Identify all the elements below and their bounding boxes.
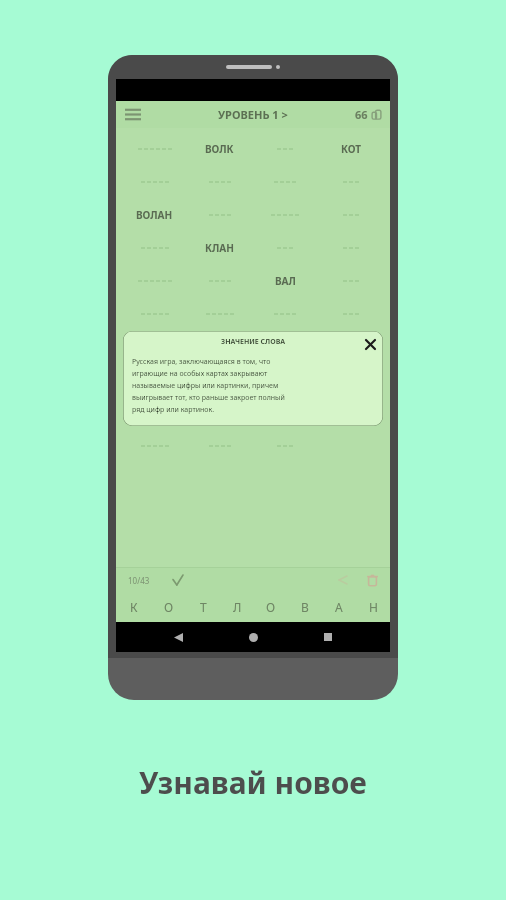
staticText: О [266, 599, 276, 615]
staticText: выигрывает тот, кто раньше закроет полны… [132, 393, 285, 403]
staticText: Н [369, 599, 378, 615]
staticText: УРОВЕНЬ 1 > [218, 107, 288, 122]
button[interactable]: ВОЛК [187, 132, 252, 165]
staticText: КЛАН [205, 241, 234, 255]
button[interactable] [122, 363, 187, 396]
button[interactable] [318, 363, 384, 396]
button[interactable]: Close [363, 337, 377, 351]
button[interactable]: ВАЛ [252, 264, 318, 297]
staticText: Л [233, 599, 242, 615]
button[interactable]: Check [170, 572, 186, 588]
button[interactable]: О [254, 592, 288, 622]
button[interactable]: А [322, 592, 356, 622]
staticText: Русская игра, заключающаяся в том, что [132, 357, 271, 367]
button[interactable]: О [151, 592, 186, 622]
button[interactable]: Coins [355, 107, 382, 122]
button[interactable]: Н [356, 592, 390, 622]
staticText: ВОЛАН [136, 208, 173, 222]
staticText: ОТЛОВ [137, 406, 172, 420]
button[interactable]: Delete [362, 570, 382, 590]
button[interactable]: Т [186, 592, 220, 622]
button[interactable] [187, 363, 252, 396]
button[interactable]: Recents [315, 624, 341, 650]
staticText: А [335, 599, 343, 615]
staticText: К [130, 599, 138, 615]
button[interactable] [252, 363, 318, 396]
staticText: 10/43 [128, 575, 150, 586]
button[interactable]: В [288, 592, 322, 622]
button[interactable]: ВОЛАН [122, 198, 187, 231]
staticText: называемые цифры или картинки, причем [132, 381, 279, 391]
button[interactable]: Л [220, 592, 254, 622]
button[interactable]: К [116, 592, 151, 622]
staticText: О [164, 599, 174, 615]
staticText: КОТ [341, 142, 362, 156]
staticText: 66 [355, 107, 368, 122]
staticText: играющие на особых картах закрывают [132, 369, 268, 379]
button[interactable]: ТОН [318, 396, 384, 429]
button[interactable]: Menu [116, 101, 150, 128]
staticText: ЗНАЧЕНИЕ СЛОВА [221, 337, 286, 347]
staticText: В [301, 599, 309, 615]
button[interactable] [187, 330, 252, 363]
button[interactable]: КЛАН [187, 231, 252, 264]
button[interactable]: КОТ [318, 132, 384, 165]
button[interactable]: Back [334, 571, 352, 589]
button[interactable]: Home [240, 624, 266, 650]
button[interactable]: УРОВЕНЬ 1 > [218, 107, 288, 122]
button[interactable]: ОТЛОВ [122, 396, 187, 429]
button[interactable] [252, 330, 318, 363]
button[interactable] [318, 330, 384, 363]
button[interactable] [187, 396, 252, 429]
button[interactable] [252, 396, 318, 429]
staticText: Узнавай новое [139, 762, 367, 803]
button[interactable]: Back [165, 624, 191, 650]
staticText: ВАЛ [275, 274, 296, 288]
staticText: ряд цифр или картинок. [132, 405, 215, 415]
staticText: ВОЛК [205, 142, 234, 156]
button[interactable] [122, 330, 187, 363]
staticText: Т [200, 599, 207, 615]
